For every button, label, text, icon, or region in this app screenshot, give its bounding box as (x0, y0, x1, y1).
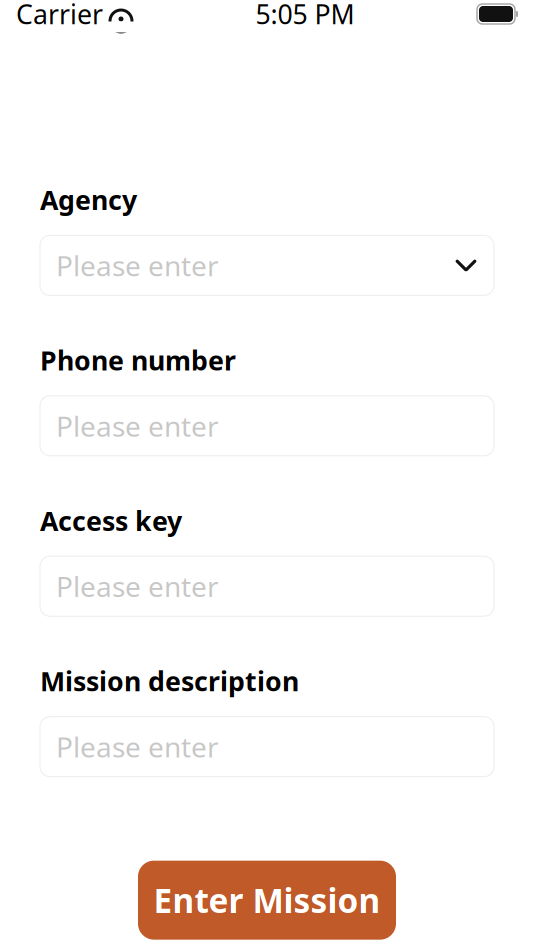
staticText: Access key (40, 503, 182, 538)
button[interactable]: Please enter (40, 396, 494, 456)
staticText: Please enter (56, 728, 219, 765)
staticText: Carrier (16, 0, 103, 32)
button[interactable]: Please enter (40, 556, 494, 616)
staticText: Enter Mission (153, 878, 380, 922)
button[interactable]: Please enter (40, 235, 494, 295)
button[interactable]: Enter Mission (138, 861, 396, 940)
staticText: Phone number (40, 342, 236, 378)
staticText: Please enter (56, 247, 219, 284)
staticText: Agency (40, 182, 137, 217)
staticText: 5:05 PM (255, 0, 354, 32)
button[interactable]: Please enter (40, 717, 494, 777)
staticText: Mission description (40, 663, 299, 699)
staticText: Please enter (56, 407, 219, 444)
staticText: Please enter (56, 568, 219, 605)
